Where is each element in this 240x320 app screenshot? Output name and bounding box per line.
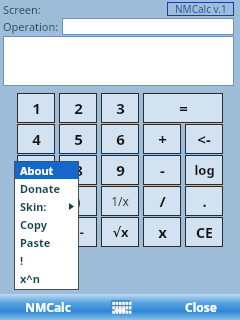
button[interactable]: CE [185, 217, 223, 247]
button[interactable]: 8 [59, 155, 97, 185]
button[interactable]: ) [59, 186, 97, 216]
button[interactable]: 1/x [101, 186, 139, 216]
button[interactable]: x [143, 217, 181, 247]
staticText: 4 [32, 129, 41, 149]
button[interactable]: NMCalc [0, 294, 95, 320]
staticText: log [194, 161, 215, 179]
staticText: ! [20, 253, 24, 268]
staticText: Operation: [3, 19, 59, 34]
staticText: Close [185, 299, 217, 315]
staticText: +- [72, 223, 84, 241]
staticText: 7 [32, 160, 41, 180]
staticText: = [179, 98, 188, 118]
staticText: <- [197, 129, 211, 149]
staticText: 1/x [111, 193, 129, 209]
button[interactable]: . [185, 186, 223, 216]
staticText: x^n [20, 271, 40, 286]
staticText: 0 [32, 222, 41, 242]
button[interactable]: log [185, 155, 223, 185]
button[interactable]: x^n [14, 269, 79, 287]
button[interactable]: ! [14, 251, 79, 269]
staticText: 9 [116, 160, 125, 180]
button[interactable]: ( [17, 186, 55, 216]
button[interactable]: 3 [101, 93, 139, 123]
button[interactable]: - [143, 155, 181, 185]
button[interactable]: Show keyboard [107, 296, 133, 318]
button[interactable]: 9 [101, 155, 139, 185]
button[interactable]: 7 [17, 155, 55, 185]
staticText: About [20, 163, 54, 178]
button[interactable] [62, 18, 234, 35]
button[interactable]: 2 [59, 93, 97, 123]
staticText: Copy [20, 217, 47, 232]
button[interactable]: +- [59, 217, 97, 247]
button[interactable]: NMCalc v.1 [167, 2, 234, 16]
staticText: 1 [32, 98, 41, 118]
button[interactable]: Donate [14, 179, 79, 197]
button[interactable]: √x [101, 217, 139, 247]
staticText: 3 [116, 98, 125, 118]
button[interactable]: <- [185, 124, 223, 154]
button[interactable]: 6 [101, 124, 139, 154]
staticText: √x [112, 223, 129, 241]
staticText: Skin: [20, 199, 47, 214]
staticText: Donate [20, 181, 61, 196]
staticText: - [160, 160, 165, 180]
button[interactable]: = [143, 93, 223, 123]
button[interactable]: Copy [14, 215, 79, 233]
staticText: ( [33, 191, 39, 211]
button[interactable]: 0 [17, 217, 55, 247]
button[interactable]: About [14, 161, 79, 179]
staticText: 5 [74, 129, 83, 149]
staticText: x [158, 222, 167, 242]
button[interactable]: 1 [17, 93, 55, 123]
button[interactable]: Skin: [14, 197, 79, 215]
staticText: 8 [74, 160, 83, 180]
staticText: . [202, 191, 207, 211]
button[interactable]: 4 [17, 124, 55, 154]
staticText: CE [196, 223, 213, 242]
staticText: Paste [20, 235, 51, 250]
staticText: 2 [74, 98, 83, 118]
staticText: ) [75, 191, 81, 211]
button[interactable]: 5 [59, 124, 97, 154]
button[interactable]: Close [162, 294, 240, 320]
staticText: / [159, 191, 166, 211]
button[interactable]: / [143, 186, 181, 216]
button[interactable]: Paste [14, 233, 79, 251]
staticText: + [158, 129, 167, 149]
staticText: NMCalc [25, 299, 71, 315]
staticText: NMCalc v.1 [175, 2, 227, 16]
button[interactable]: + [143, 124, 181, 154]
staticText: Screen: [3, 2, 41, 17]
button[interactable] [3, 36, 234, 86]
staticText: 6 [116, 129, 125, 149]
